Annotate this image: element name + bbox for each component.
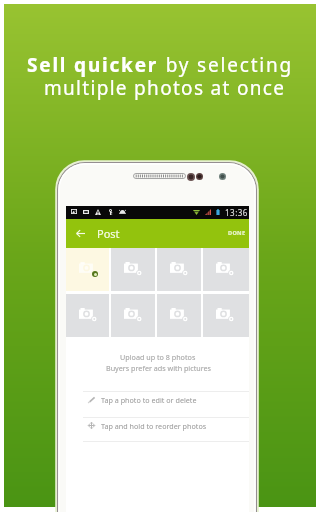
staticText: Upload up to 8 photos	[120, 352, 196, 362]
button[interactable]: Back	[70, 223, 91, 244]
button[interactable]: Add photo	[203, 294, 249, 337]
button[interactable]: Tap and hold to reorder photos	[66, 413, 249, 438]
staticText: Buyers prefer ads with pictures	[106, 363, 212, 373]
staticText: multiple photos at once	[44, 75, 286, 101]
button[interactable]: Add photo	[66, 248, 109, 291]
staticText: by selecting	[159, 52, 294, 78]
button[interactable]: DONE	[222, 222, 248, 243]
button[interactable]: Add photo	[157, 294, 201, 337]
staticText: DONE	[228, 229, 246, 237]
button[interactable]: Add photo	[111, 294, 155, 337]
button[interactable]: Tap a photo to edit or delete	[66, 387, 249, 413]
staticText: Post	[97, 226, 120, 241]
staticText: Tap and hold to reorder photos	[101, 421, 207, 431]
button[interactable]: Add photo	[157, 248, 201, 291]
staticText: Tap a photo to edit or delete	[101, 395, 197, 405]
button[interactable]: Add photo	[203, 248, 249, 291]
button[interactable]: Add photo	[111, 248, 155, 291]
button[interactable]: Add photo	[66, 294, 109, 337]
staticText: Sell quicker	[27, 52, 159, 78]
staticText: 13:36	[225, 207, 248, 218]
